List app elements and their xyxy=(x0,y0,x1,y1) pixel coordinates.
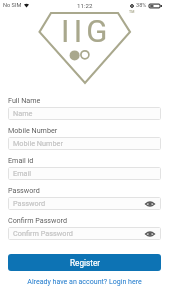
staticText: No SIM xyxy=(3,2,22,9)
button[interactable]: Mobile Number xyxy=(8,137,161,150)
staticText: Email id xyxy=(8,156,34,164)
staticText: Confirm Password xyxy=(8,216,67,224)
staticText: Name xyxy=(13,109,33,118)
button[interactable]: Name xyxy=(8,107,161,120)
staticText: 38% xyxy=(136,2,147,9)
button[interactable]: Password xyxy=(8,197,161,210)
staticText: IIG xyxy=(61,13,112,49)
staticText: 11:22 xyxy=(77,2,93,9)
staticText: Confirm Password xyxy=(13,229,73,238)
button[interactable]: Confirm Password xyxy=(8,227,161,240)
staticText: Password xyxy=(13,199,46,208)
staticText: Already have an account? Login here xyxy=(27,277,142,285)
staticText: TM xyxy=(129,10,135,14)
staticText: Password xyxy=(8,186,40,194)
staticText: Full Name xyxy=(8,96,41,104)
staticText: Register xyxy=(70,258,100,268)
staticText: Email xyxy=(13,169,32,178)
button[interactable]: Show password xyxy=(143,227,156,240)
button[interactable]: Already have an account? Login here xyxy=(0,275,169,286)
button[interactable]: Register xyxy=(8,254,161,271)
button[interactable]: Show password xyxy=(143,197,156,210)
button[interactable]: Email xyxy=(8,167,161,180)
staticText: Mobile Number xyxy=(13,139,63,148)
staticText: Mobile Number xyxy=(8,126,58,134)
